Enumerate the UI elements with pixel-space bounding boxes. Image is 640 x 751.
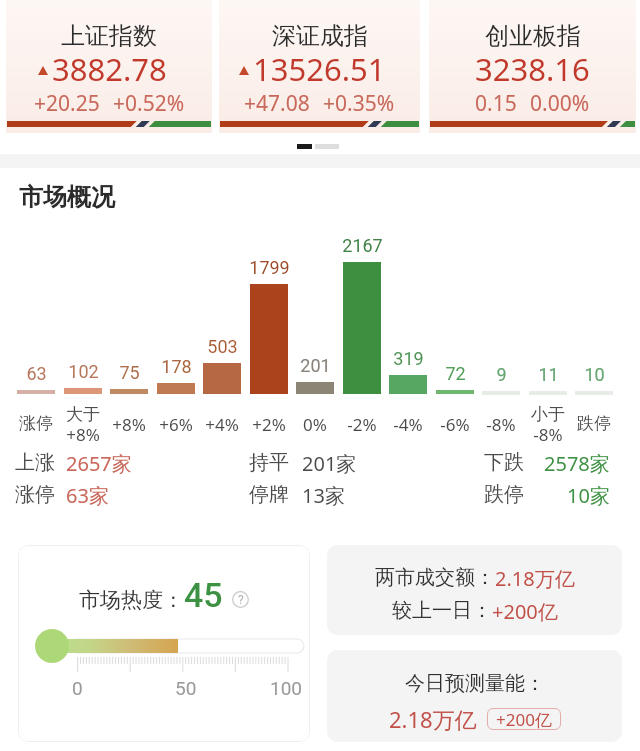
staticText: +0.35% bbox=[323, 89, 395, 118]
staticText: 2.18万亿 bbox=[495, 565, 575, 592]
staticText: 45 bbox=[184, 575, 223, 615]
staticText: -4% bbox=[393, 413, 423, 436]
staticText: 涨停 bbox=[19, 413, 53, 434]
staticText: +2% bbox=[252, 413, 286, 436]
staticText: 11 bbox=[538, 364, 559, 385]
staticText: 13526.51 bbox=[253, 48, 386, 90]
staticText: 10家 bbox=[567, 482, 610, 509]
staticText: 9 bbox=[496, 364, 507, 385]
staticText: 0% bbox=[303, 413, 327, 436]
staticText: 13家 bbox=[302, 482, 345, 509]
staticText: 100 bbox=[270, 677, 303, 699]
staticText: ? bbox=[238, 593, 244, 607]
staticText: 持平 bbox=[249, 450, 289, 475]
staticText: -2% bbox=[347, 413, 377, 436]
staticText: 创业板指 bbox=[485, 21, 581, 51]
staticText: 2657家 bbox=[66, 450, 132, 477]
staticText: 503 bbox=[207, 336, 238, 357]
staticText: +8% bbox=[66, 423, 100, 446]
staticText: 3882.78 bbox=[52, 48, 167, 90]
staticText: 上证指数 bbox=[61, 21, 157, 51]
staticText: 2578家 bbox=[544, 450, 610, 477]
button[interactable]: 两市成交额： bbox=[327, 545, 622, 635]
staticText: 63家 bbox=[66, 482, 109, 509]
staticText: 大于 bbox=[66, 404, 100, 425]
staticText: +6% bbox=[159, 413, 193, 436]
staticText: 市场热度： bbox=[79, 587, 184, 613]
button[interactable] bbox=[18, 545, 310, 742]
button[interactable]: 今日预测量能： bbox=[327, 650, 622, 742]
staticText: 201家 bbox=[302, 450, 357, 477]
staticText: 小于 bbox=[531, 404, 565, 425]
staticText: +4% bbox=[205, 413, 239, 436]
button[interactable]: 创业板指 bbox=[429, 0, 636, 133]
staticText: +200亿 bbox=[492, 598, 558, 625]
staticText: 涨停 bbox=[15, 482, 55, 507]
staticText: 72 bbox=[445, 363, 466, 384]
staticText: 102 bbox=[68, 361, 99, 382]
staticText: -8% bbox=[486, 413, 516, 436]
staticText: -8% bbox=[533, 423, 563, 446]
staticText: 10 bbox=[584, 364, 605, 385]
staticText: 下跌 bbox=[484, 450, 524, 475]
staticText: 2.18万亿 bbox=[389, 704, 477, 734]
staticText: -6% bbox=[440, 413, 470, 436]
button[interactable]: 上证指数 bbox=[6, 0, 212, 133]
staticText: 2167 bbox=[342, 235, 383, 256]
staticText: 50 bbox=[175, 677, 197, 699]
staticText: 上涨 bbox=[15, 450, 55, 475]
staticText: 停牌 bbox=[249, 482, 289, 507]
staticText: 3238.16 bbox=[475, 48, 590, 90]
staticText: 较上一日： bbox=[392, 598, 492, 623]
staticText: +0.52% bbox=[113, 89, 185, 118]
staticText: 0.00% bbox=[530, 89, 590, 118]
staticText: 跌停 bbox=[577, 413, 611, 434]
button[interactable]: 深证成指 bbox=[219, 0, 420, 133]
staticText: 201 bbox=[300, 355, 331, 376]
staticText: 0 bbox=[72, 677, 83, 699]
staticText: +200亿 bbox=[496, 708, 552, 730]
staticText: 319 bbox=[393, 348, 424, 369]
staticText: 今日预测量能： bbox=[405, 671, 545, 696]
staticText: +20.25 bbox=[34, 89, 100, 118]
staticText: +47.08 bbox=[244, 89, 310, 118]
staticText: 75 bbox=[119, 362, 140, 383]
staticText: 0.15 bbox=[475, 89, 517, 118]
staticText: 两市成交额： bbox=[375, 565, 495, 590]
staticText: 市场概况 bbox=[19, 182, 115, 212]
staticText: +8% bbox=[112, 413, 146, 436]
staticText: 深证成指 bbox=[272, 21, 368, 51]
staticText: 1799 bbox=[249, 257, 290, 278]
staticText: 178 bbox=[161, 356, 192, 377]
staticText: 跌停 bbox=[484, 482, 524, 507]
staticText: 63 bbox=[26, 363, 47, 384]
